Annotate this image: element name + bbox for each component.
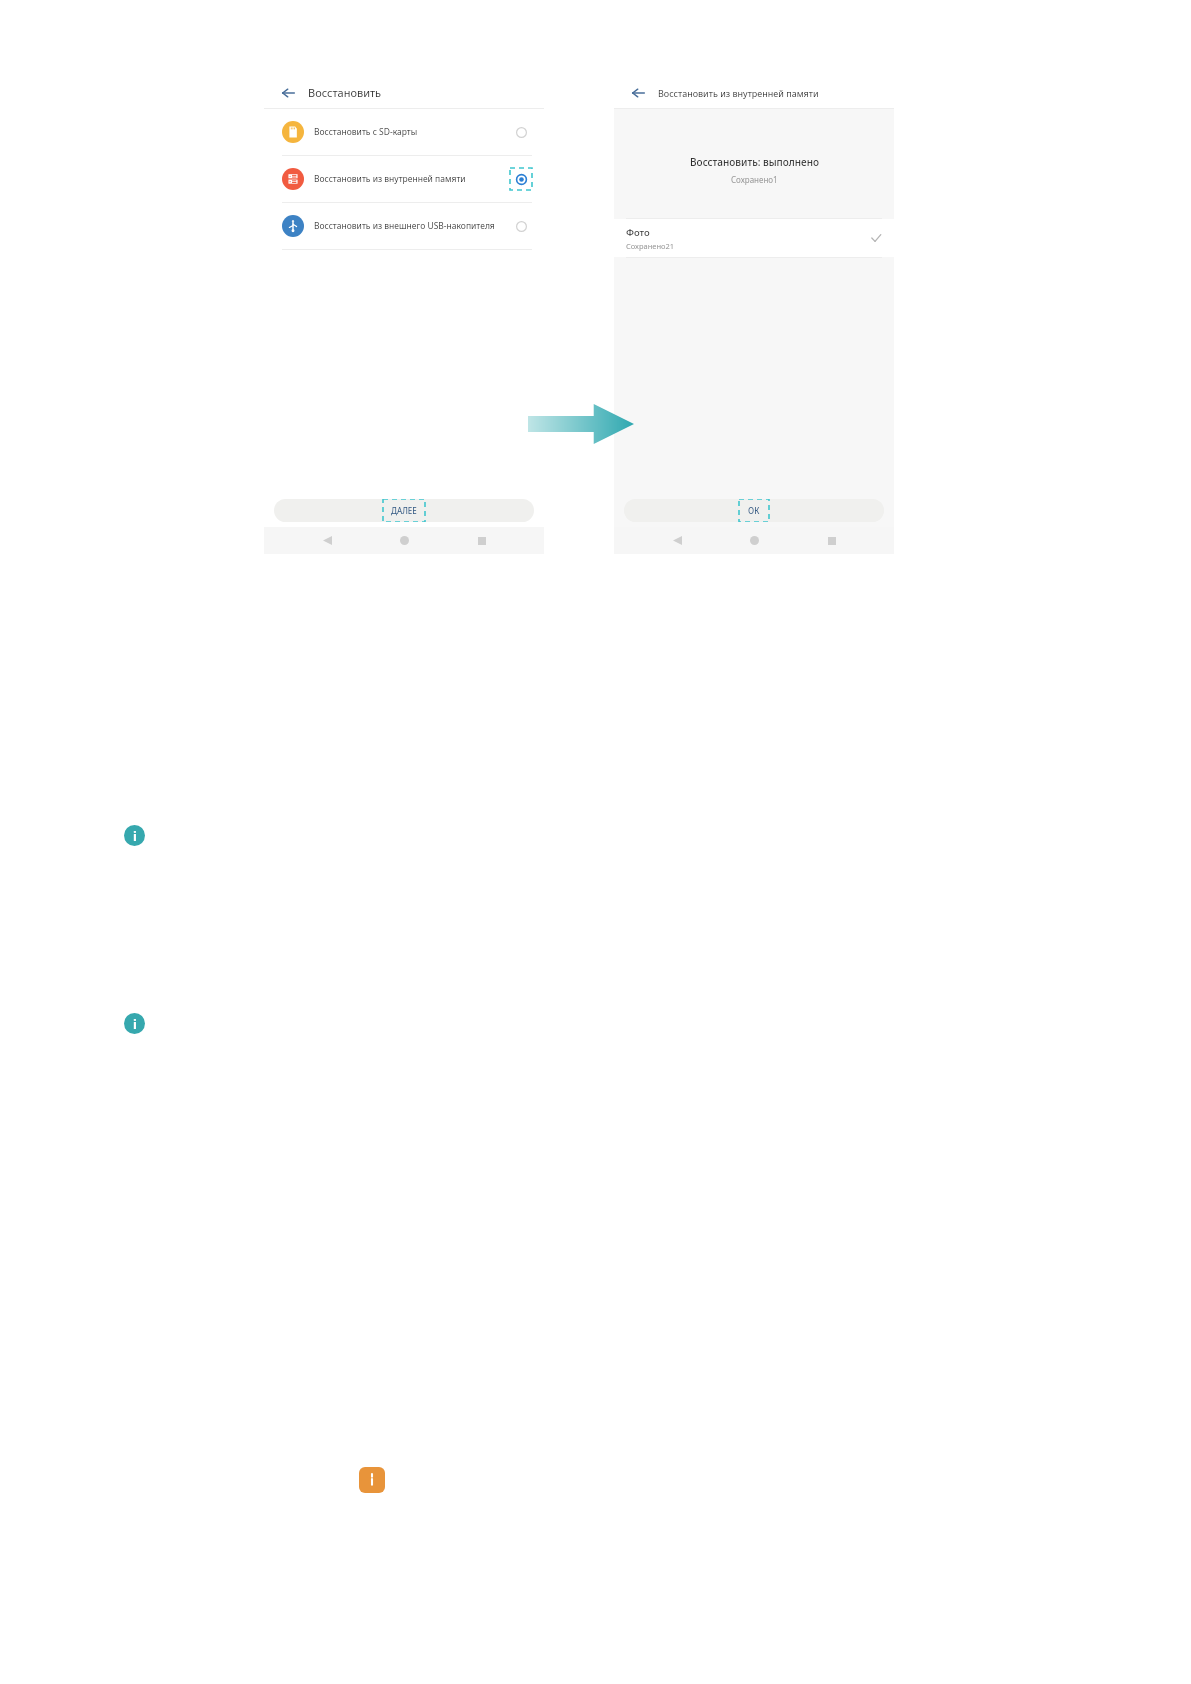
button[interactable]: ДАЛЕЕ — [274, 499, 534, 522]
staticText: Восстановить из внутренней памяти — [658, 87, 819, 99]
staticText: i — [133, 1015, 137, 1033]
staticText: Восстановить из внутренней памяти — [314, 173, 504, 185]
staticText: Восстановить: выполнено — [690, 155, 819, 169]
staticText: Сохранено1 — [731, 174, 778, 185]
button[interactable]: Back — [628, 83, 648, 103]
staticText: Сохранено21 — [626, 241, 675, 251]
button[interactable]: ОК — [624, 499, 884, 522]
button[interactable]: Back — [278, 83, 298, 103]
button[interactable]: Восстановить из внешнего USB-накопителя — [282, 203, 532, 249]
button[interactable]: Фото — [626, 219, 882, 257]
button[interactable]: Back — [662, 527, 692, 554]
staticText: i — [133, 827, 137, 845]
staticText: Фото — [626, 226, 650, 239]
button[interactable]: Back — [312, 527, 342, 554]
staticText: ОК — [748, 505, 760, 516]
button[interactable]: Home — [739, 527, 769, 554]
staticText: Восстановить — [308, 85, 382, 100]
button[interactable]: Восстановить с SD-карты — [282, 109, 532, 155]
button[interactable]: Home — [389, 527, 419, 554]
staticText: ДАЛЕЕ — [391, 505, 417, 516]
staticText: Восстановить из внешнего USB-накопителя — [314, 220, 504, 232]
button[interactable]: Recents — [467, 527, 497, 554]
button[interactable]: Recents — [817, 527, 847, 554]
staticText: Восстановить с SD-карты — [314, 126, 504, 138]
button[interactable]: Восстановить из внутренней памяти — [282, 156, 532, 202]
